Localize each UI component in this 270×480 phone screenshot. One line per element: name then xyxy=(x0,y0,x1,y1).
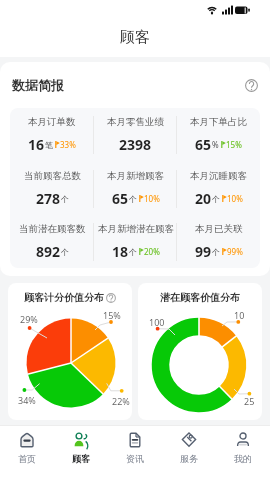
staticText: 顾客计分价值分布 xyxy=(24,291,104,304)
staticText: 本月新增潜在顾客 xyxy=(98,223,174,235)
staticText: 潜在顾客价值分布 xyxy=(160,291,240,304)
button[interactable]: 顾客计分价值分布 xyxy=(8,283,132,420)
staticText: 20% xyxy=(144,246,160,257)
button[interactable]: 服务 xyxy=(162,428,216,480)
staticText: 个 xyxy=(61,247,69,257)
staticText: 892 xyxy=(36,242,61,261)
button[interactable]: 当前顾客总数 xyxy=(10,162,94,215)
staticText: 顾客 xyxy=(120,28,150,47)
button[interactable]: 本月已关联 xyxy=(177,215,260,268)
staticText: 10% xyxy=(227,193,243,204)
button[interactable]: 本月下单占比 xyxy=(177,108,260,162)
staticText: 首页 xyxy=(18,453,36,464)
staticText: 数据简报 xyxy=(12,77,64,93)
staticText: 10 xyxy=(234,309,245,321)
button[interactable] xyxy=(245,79,258,92)
staticText: 当前潜在顾客数 xyxy=(19,223,86,235)
staticText: 15% xyxy=(226,139,242,150)
staticText: 个 xyxy=(129,247,137,257)
staticText: 我的 xyxy=(234,453,252,464)
button[interactable]: 本月新增潜在顾客 xyxy=(94,215,177,268)
staticText: 15% xyxy=(103,309,121,321)
staticText: 笔 xyxy=(45,140,53,150)
staticText: 99 xyxy=(195,242,212,261)
staticText: 个 xyxy=(61,194,69,204)
staticText: 本月订单数 xyxy=(28,116,76,128)
staticText: 个 xyxy=(129,194,137,204)
button[interactable] xyxy=(106,293,116,303)
button[interactable]: 本月新增顾客 xyxy=(94,162,177,215)
staticText: 65 xyxy=(195,135,212,154)
button[interactable]: 当前潜在顾客数 xyxy=(10,215,94,268)
staticText: 65 xyxy=(112,189,129,208)
staticText: 99% xyxy=(227,246,243,257)
button[interactable]: 我的 xyxy=(216,428,270,480)
staticText: 34% xyxy=(18,394,36,406)
button[interactable]: 本月沉睡顾客 xyxy=(177,162,260,215)
staticText: 资讯 xyxy=(126,453,144,464)
staticText: 29% xyxy=(20,313,38,325)
button[interactable]: 本月订单数 xyxy=(10,108,94,162)
button[interactable]: 资讯 xyxy=(108,428,162,480)
button[interactable]: 顾客 xyxy=(54,428,108,480)
button[interactable]: 本月零售业绩 xyxy=(94,108,177,162)
staticText: 10% xyxy=(144,193,160,204)
staticText: 本月新增顾客 xyxy=(107,170,164,182)
staticText: 当前顾客总数 xyxy=(24,170,81,182)
staticText: 100 xyxy=(149,316,165,328)
staticText: 33% xyxy=(60,139,76,150)
button[interactable]: 首页 xyxy=(0,428,54,480)
staticText: 2398 xyxy=(119,135,152,154)
staticText: 25 xyxy=(244,395,255,407)
staticText: 本月零售业绩 xyxy=(107,116,164,128)
staticText: 16 xyxy=(28,135,45,154)
staticText: 本月沉睡顾客 xyxy=(190,170,247,182)
staticText: 顾客 xyxy=(72,453,90,464)
staticText: 22% xyxy=(112,395,130,407)
staticText: 18 xyxy=(112,242,129,261)
staticText: 本月已关联 xyxy=(195,223,243,235)
staticText: 278 xyxy=(36,189,61,208)
staticText: % xyxy=(212,139,219,150)
button[interactable]: 潜在顾客价值分布 xyxy=(138,283,262,420)
staticText: 20 xyxy=(195,189,212,208)
staticText: 个 xyxy=(212,194,220,204)
staticText: 个 xyxy=(212,247,220,257)
staticText: 服务 xyxy=(180,453,198,464)
staticText: 本月下单占比 xyxy=(190,116,247,128)
